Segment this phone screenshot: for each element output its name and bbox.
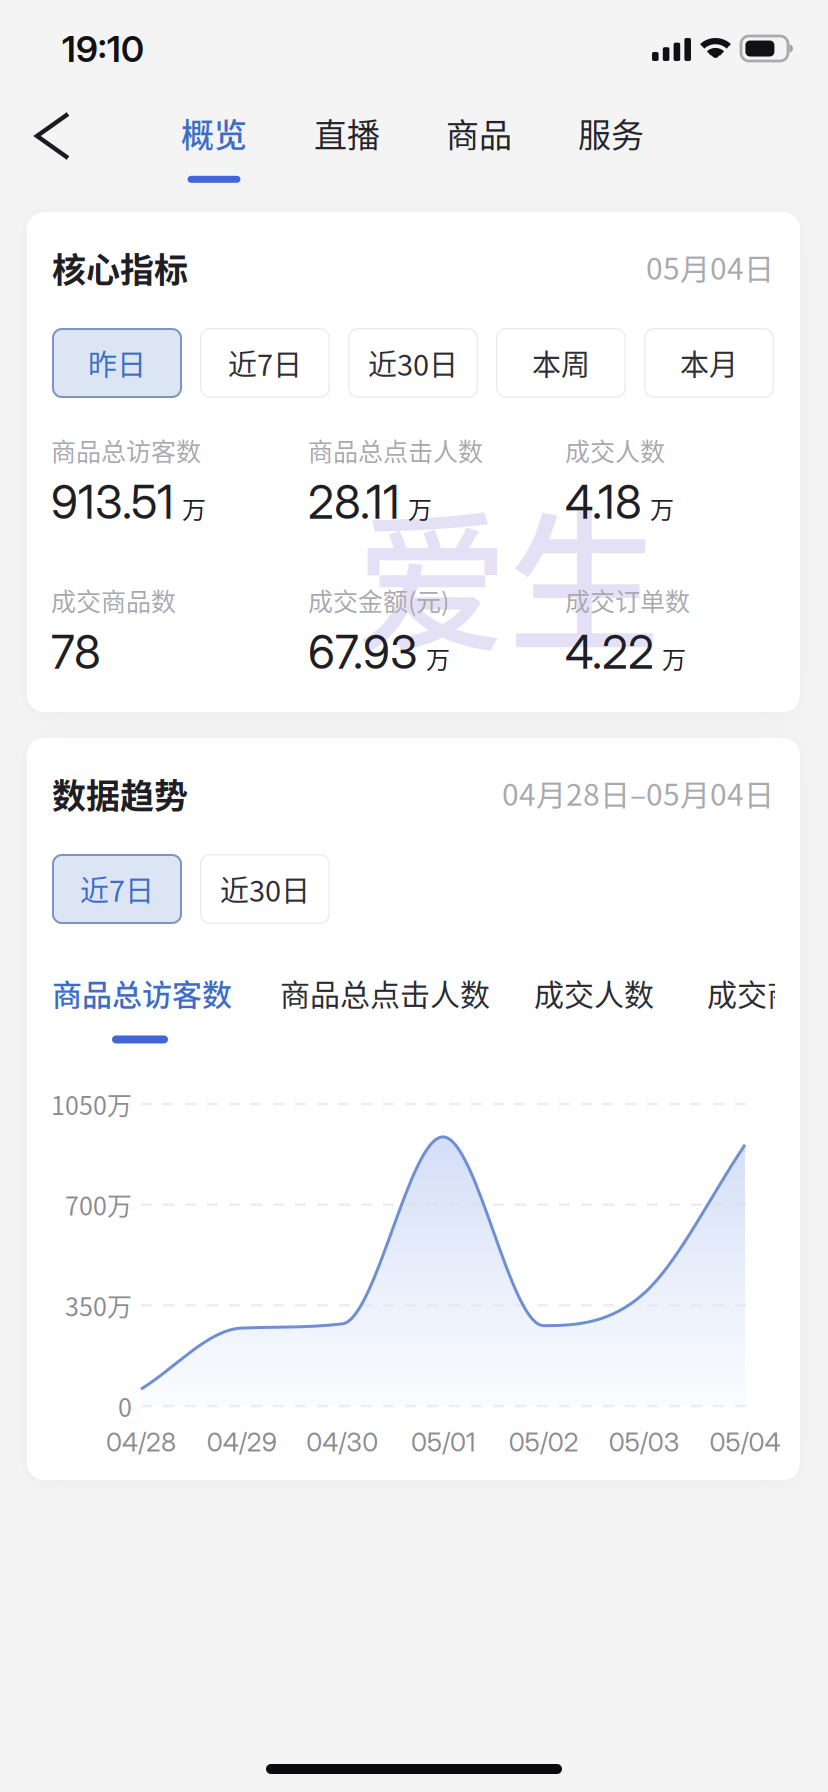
staticText: 67.93 [308, 624, 418, 680]
staticText: 商品总点击人数 [308, 432, 483, 468]
staticText: 本周 [532, 342, 590, 384]
button[interactable]: 服务 [556, 109, 666, 195]
button[interactable]: 本月 [644, 328, 774, 398]
staticText: 万 [426, 641, 450, 676]
staticText: 商品 [446, 109, 512, 157]
staticText: 05月04日 [646, 245, 774, 288]
staticText: 350万 [65, 1287, 132, 1323]
staticText: 商品总访客数 [52, 971, 232, 1014]
staticText: 爱生 [356, 463, 660, 683]
staticText: 成交金额(元) [308, 582, 449, 618]
staticText: 成交商品数 [51, 582, 176, 618]
staticText: 近7日 [228, 342, 302, 384]
staticText: 0 [118, 1388, 132, 1424]
staticText: 直播 [314, 109, 380, 157]
button[interactable]: 近30日 [348, 328, 478, 398]
staticText: 商品总访客数 [51, 432, 201, 468]
staticText: 1050万 [51, 1086, 132, 1122]
staticText: 概览 [181, 109, 247, 157]
staticText: 913.51 [51, 474, 174, 530]
staticText: 05/03 [609, 1426, 680, 1458]
staticText: 04/30 [306, 1426, 378, 1458]
staticText: 成交商品数 [707, 971, 828, 1014]
button[interactable]: 成交人数 [534, 971, 784, 1057]
button[interactable]: 商品 [424, 109, 534, 195]
staticText: 成交订单数 [565, 582, 690, 618]
staticText: 4.22 [565, 624, 654, 680]
staticText: 700万 [65, 1187, 132, 1223]
staticText: 04/29 [207, 1426, 277, 1458]
button[interactable]: 成交商品数 [707, 971, 828, 1057]
staticText: 万 [662, 641, 686, 676]
staticText: 05/04 [709, 1426, 780, 1458]
staticText: 本月 [680, 342, 738, 384]
staticText: 数据趋势 [52, 769, 188, 818]
button[interactable]: Back [0, 96, 105, 176]
staticText: 28.11 [308, 474, 400, 530]
staticText: 昨日 [88, 342, 146, 384]
staticText: 商品总点击人数 [280, 971, 490, 1014]
button[interactable]: 近30日 [200, 854, 330, 924]
button[interactable]: 本周 [496, 328, 626, 398]
staticText: 4.18 [565, 474, 642, 530]
button[interactable]: 概览 [159, 109, 269, 195]
staticText: 05/02 [509, 1426, 579, 1458]
staticText: 核心指标 [52, 243, 188, 292]
staticText: 04月28日–05月04日 [502, 771, 774, 814]
staticText: 万 [408, 491, 432, 526]
button[interactable]: 近7日 [200, 328, 330, 398]
staticText: 成交人数 [534, 971, 654, 1014]
staticText: 19:10 [62, 27, 144, 71]
button[interactable]: 直播 [292, 109, 402, 195]
staticText: 04/28 [106, 1426, 176, 1458]
staticText: 成交人数 [565, 432, 665, 468]
staticText: 78 [51, 624, 101, 680]
button[interactable]: 昨日 [52, 328, 182, 398]
staticText: 万 [182, 491, 206, 526]
staticText: 服务 [578, 109, 644, 157]
button[interactable]: 近7日 [52, 854, 182, 924]
button[interactable]: 商品总点击人数 [280, 971, 530, 1057]
staticText: 近30日 [220, 868, 310, 910]
staticText: 近30日 [368, 342, 458, 384]
button[interactable]: 商品总访客数 [52, 971, 302, 1057]
staticText: 近7日 [80, 868, 154, 910]
staticText: 05/01 [411, 1426, 475, 1458]
staticText: 万 [650, 491, 674, 526]
